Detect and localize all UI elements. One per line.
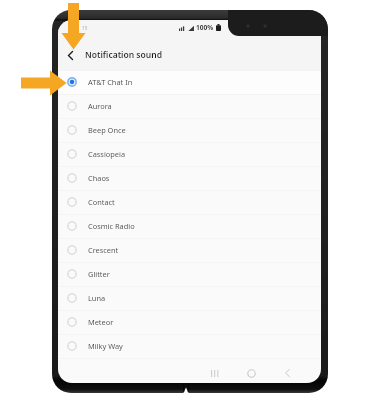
staticText: Glitter	[88, 269, 110, 279]
button[interactable]: Meteor	[58, 310, 321, 334]
staticText: Cassiopeia	[88, 149, 126, 159]
staticText: 100%	[196, 23, 214, 32]
button[interactable]: Beep Once	[58, 118, 321, 142]
staticText: Crescent	[88, 245, 119, 255]
button[interactable]: Crescent	[58, 238, 321, 262]
staticText: Meteor	[88, 317, 114, 327]
button[interactable]: Home	[241, 363, 261, 383]
button[interactable]: AT&T Chat In	[58, 70, 321, 94]
button[interactable]: Contact	[58, 190, 321, 214]
staticText: Milky Way	[88, 341, 123, 351]
staticText: AT&T Chat In	[88, 77, 133, 87]
staticText: Beep Once	[88, 125, 126, 135]
button[interactable]: Cassiopeia	[58, 142, 321, 166]
button[interactable]: Back	[277, 363, 297, 383]
button[interactable]: Cosmic Radio	[58, 214, 321, 238]
button[interactable]: Aurora	[58, 94, 321, 118]
button[interactable]: Chaos	[58, 166, 321, 190]
staticText: Chaos	[88, 173, 110, 183]
staticText: Cosmic Radio	[88, 221, 135, 231]
staticText: Luna	[88, 293, 106, 303]
button[interactable]: Milky Way	[58, 334, 321, 358]
staticText: 15	[82, 25, 88, 31]
button[interactable]: Luna	[58, 286, 321, 310]
staticText: Aurora	[88, 101, 112, 111]
button[interactable]: Recents	[205, 363, 225, 383]
staticText: Contact	[88, 197, 115, 207]
button[interactable]: Glitter	[58, 262, 321, 286]
staticText: Notification sound	[85, 49, 162, 61]
button[interactable]: Back	[61, 46, 79, 64]
